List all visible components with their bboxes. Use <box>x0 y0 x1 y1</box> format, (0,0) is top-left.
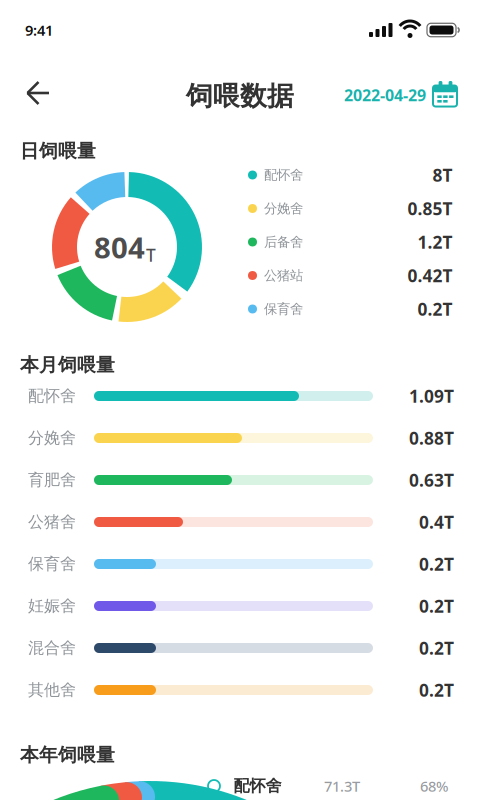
staticText: T <box>146 243 156 266</box>
staticText: 9:41 <box>25 20 53 40</box>
staticText: 本年饲喂量 <box>20 743 115 766</box>
staticText: 配怀舍 <box>28 386 76 406</box>
staticText: 0.4T <box>419 510 454 533</box>
staticText: 保育舍 <box>28 554 76 574</box>
button[interactable] <box>0 0 480 800</box>
staticText: 0.42T <box>407 264 452 287</box>
staticText: 本月饲喂量 <box>20 353 115 376</box>
staticText: 0.2T <box>419 594 454 617</box>
staticText: 1.2T <box>417 230 452 253</box>
staticText: 8T <box>432 163 452 186</box>
staticText: 71.3T <box>324 776 360 796</box>
staticText: 保育舍 <box>264 301 303 317</box>
staticText: 分娩舍 <box>28 428 76 448</box>
staticText: 68% <box>420 776 448 796</box>
staticText: 混合舍 <box>28 638 76 658</box>
staticText: 育肥舍 <box>28 470 76 490</box>
staticText: 804 <box>94 227 145 266</box>
staticText: 饲喂数据 <box>186 80 294 112</box>
staticText: 公猪舍 <box>28 512 76 532</box>
staticText: 其他舍 <box>28 680 76 700</box>
staticText: 0.2T <box>419 552 454 575</box>
staticText: 0.88T <box>409 426 454 449</box>
staticText: 配怀舍 <box>233 776 281 796</box>
staticText: 日饲喂量 <box>20 139 96 162</box>
staticText: 分娩舍 <box>264 200 303 217</box>
staticText: 公猪站 <box>264 267 303 284</box>
staticText: 0.2T <box>417 297 452 320</box>
staticText: 0.2T <box>419 636 454 659</box>
staticText: 配怀舍 <box>264 167 303 183</box>
staticText: 1.09T <box>409 384 454 407</box>
staticText: 0.63T <box>409 468 454 491</box>
staticText: 0.85T <box>407 197 452 220</box>
staticText: 0.2T <box>419 678 454 701</box>
button[interactable]: 2022-04-29 <box>0 0 480 800</box>
staticText: 后备舍 <box>264 234 303 250</box>
staticText: 2022-04-29 <box>344 84 426 106</box>
staticText: 妊娠舍 <box>28 596 76 616</box>
